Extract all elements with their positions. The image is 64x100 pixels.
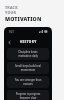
- staticText: 9:41: [9, 30, 14, 33]
- staticText: YOUR: [5, 10, 17, 15]
- button[interactable]: Progress is progress however slow: [7, 90, 49, 100]
- staticText: HISTORY: [20, 40, 37, 44]
- staticText: Discipline beats motivation daily: [12, 50, 44, 58]
- staticText: TRACK: [5, 5, 18, 10]
- staticText: You are stronger than excuses: [12, 78, 44, 86]
- button[interactable]: Discipline beats motivation daily: [7, 48, 49, 60]
- staticText: Progress is progress however slow: [12, 92, 44, 100]
- staticText: MOTIVATION: [5, 15, 42, 22]
- button[interactable]: You are stronger than excuses: [7, 76, 49, 88]
- staticText: Small steps build real momentum: [12, 64, 44, 72]
- button[interactable]: Back: [6, 39, 12, 45]
- button[interactable]: Small steps build real momentum: [7, 62, 49, 74]
